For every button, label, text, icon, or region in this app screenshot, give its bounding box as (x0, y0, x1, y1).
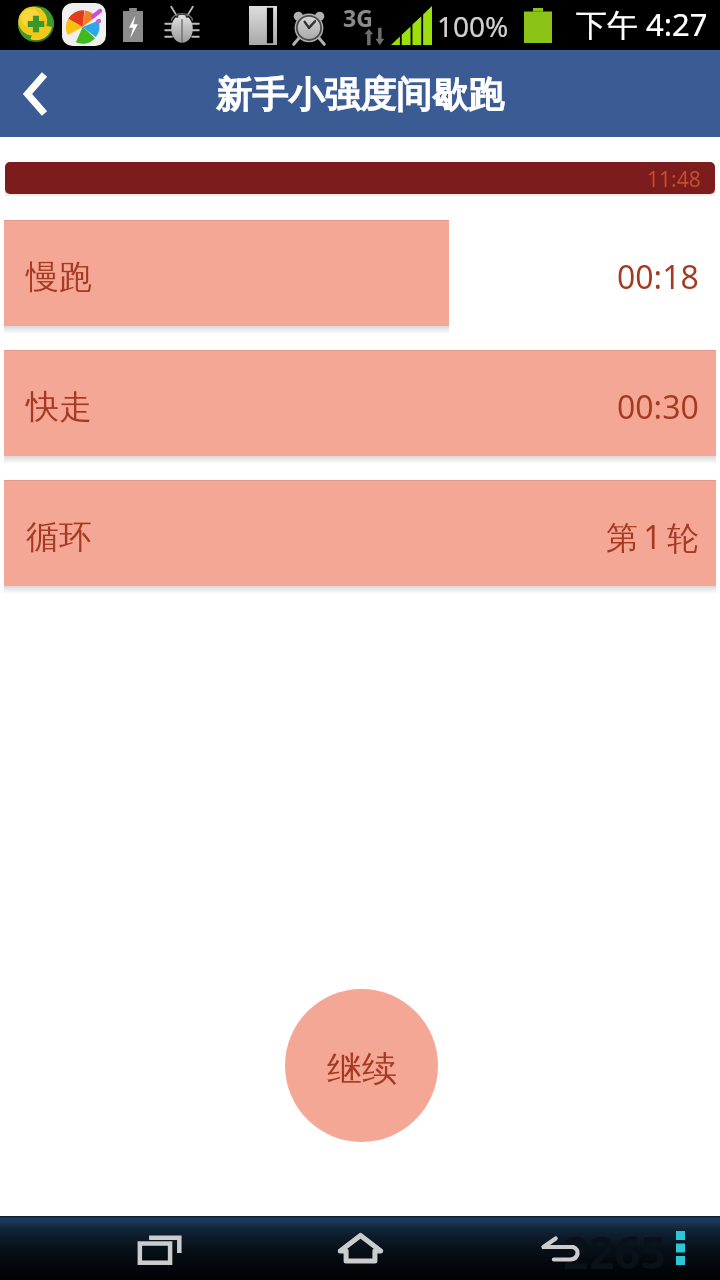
staticText: 新手小强度间歇跑 (216, 72, 504, 117)
button[interactable]: 快走 (4, 350, 716, 456)
staticText: 3G (343, 2, 373, 33)
staticText: 2265 (563, 1221, 666, 1280)
staticText: 继续 (327, 1047, 397, 1091)
button[interactable]: 循环 (4, 480, 716, 586)
staticText: 循环 (26, 516, 92, 558)
staticText: 第 1 轮 (606, 515, 699, 559)
button[interactable]: Back (0, 50, 80, 137)
staticText: 00:30 (617, 385, 699, 429)
staticText: 下午 4:27 (576, 3, 708, 45)
button[interactable]: Home (320, 1216, 400, 1280)
button[interactable]: 继续 (285, 989, 438, 1142)
button[interactable]: More options (650, 1216, 710, 1280)
staticText: 快走 (26, 386, 92, 428)
button[interactable]: Recent apps (120, 1216, 200, 1280)
staticText: 00:18 (617, 255, 699, 299)
staticText: 100% (437, 7, 509, 45)
button[interactable]: Back (520, 1216, 600, 1280)
button[interactable]: 慢跑 (4, 220, 716, 326)
staticText: 慢跑 (26, 256, 92, 298)
staticText: 11:48 (647, 165, 701, 194)
